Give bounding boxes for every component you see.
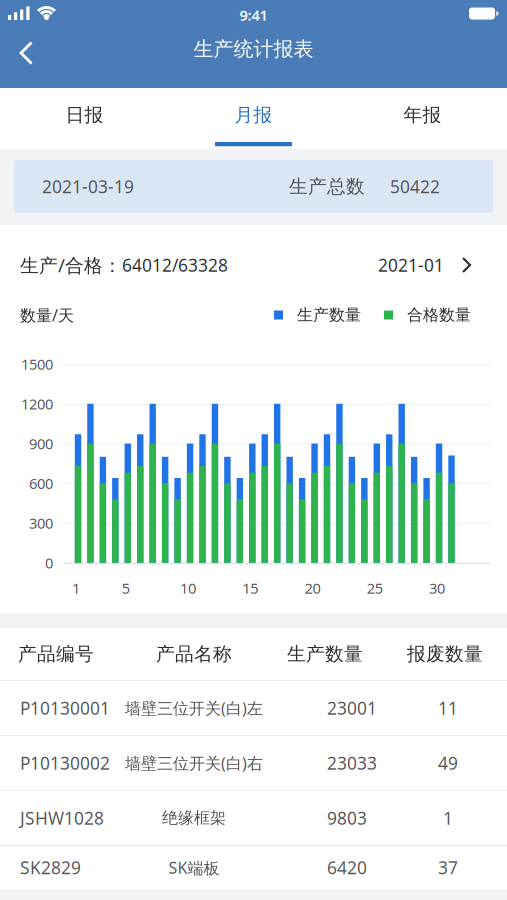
staticText: P10130002 xyxy=(20,751,110,774)
staticText: 30 xyxy=(429,578,445,598)
staticText: 墙壁三位开关(白)左 xyxy=(125,697,263,719)
staticText: SK端板 xyxy=(168,857,219,878)
staticText: 49 xyxy=(438,751,458,774)
staticText: 37 xyxy=(438,856,458,879)
staticText: 生产/合格： xyxy=(20,253,122,277)
staticText: 2021-03-19 xyxy=(42,175,134,198)
staticText: 5 xyxy=(122,578,130,598)
button[interactable]: 年报 xyxy=(338,88,507,142)
staticText: 生产总数 xyxy=(289,175,365,198)
button[interactable]: 月报 xyxy=(169,88,338,142)
button[interactable]: 2021-03-19 xyxy=(14,160,493,213)
staticText: 6420 xyxy=(327,856,367,879)
staticText: 50422 xyxy=(390,175,440,198)
staticText: 10 xyxy=(180,578,196,598)
staticText: 11 xyxy=(438,696,458,719)
staticText: 生产数量 xyxy=(297,305,361,325)
staticText: 合格数量 xyxy=(407,305,471,325)
staticText: 月报 xyxy=(234,103,272,126)
staticText: 1 xyxy=(72,578,80,598)
staticText: 23033 xyxy=(327,751,377,774)
staticText: 1200 xyxy=(21,394,53,414)
staticText: 0 xyxy=(45,553,53,573)
staticText: 生产统计报表 xyxy=(193,37,313,61)
staticText: JSHW1028 xyxy=(20,806,104,829)
staticText: 1 xyxy=(443,806,453,829)
staticText: 23001 xyxy=(327,696,377,719)
button[interactable]: 日报 xyxy=(0,88,169,142)
staticText: 300 xyxy=(29,513,53,533)
button[interactable] xyxy=(0,31,44,67)
staticText: 绝缘框架 xyxy=(162,808,226,828)
staticText: 900 xyxy=(29,434,53,453)
staticText: 生产数量 xyxy=(287,642,363,665)
staticText: 64012/63328 xyxy=(122,253,228,276)
staticText: 2021-01 xyxy=(378,253,444,276)
staticText: 9:41 xyxy=(239,5,267,25)
staticText: 15 xyxy=(242,578,258,598)
staticText: 日报 xyxy=(65,103,103,126)
staticText: 600 xyxy=(29,474,53,493)
staticText: 9803 xyxy=(327,806,367,829)
staticText: 年报 xyxy=(403,103,441,126)
staticText: 数量/天 xyxy=(20,304,74,326)
button[interactable]: 2021-01 xyxy=(378,253,507,276)
staticText: SK2829 xyxy=(20,856,81,879)
staticText: P10130001 xyxy=(20,696,110,719)
staticText: 报废数量 xyxy=(407,642,483,665)
staticText: 产品名称 xyxy=(156,642,232,665)
staticText: 20 xyxy=(304,578,320,598)
staticText: 25 xyxy=(367,578,383,598)
staticText: 墙壁三位开关(白)右 xyxy=(125,752,263,774)
staticText: 产品编号 xyxy=(18,642,94,665)
staticText: 1500 xyxy=(21,354,53,374)
